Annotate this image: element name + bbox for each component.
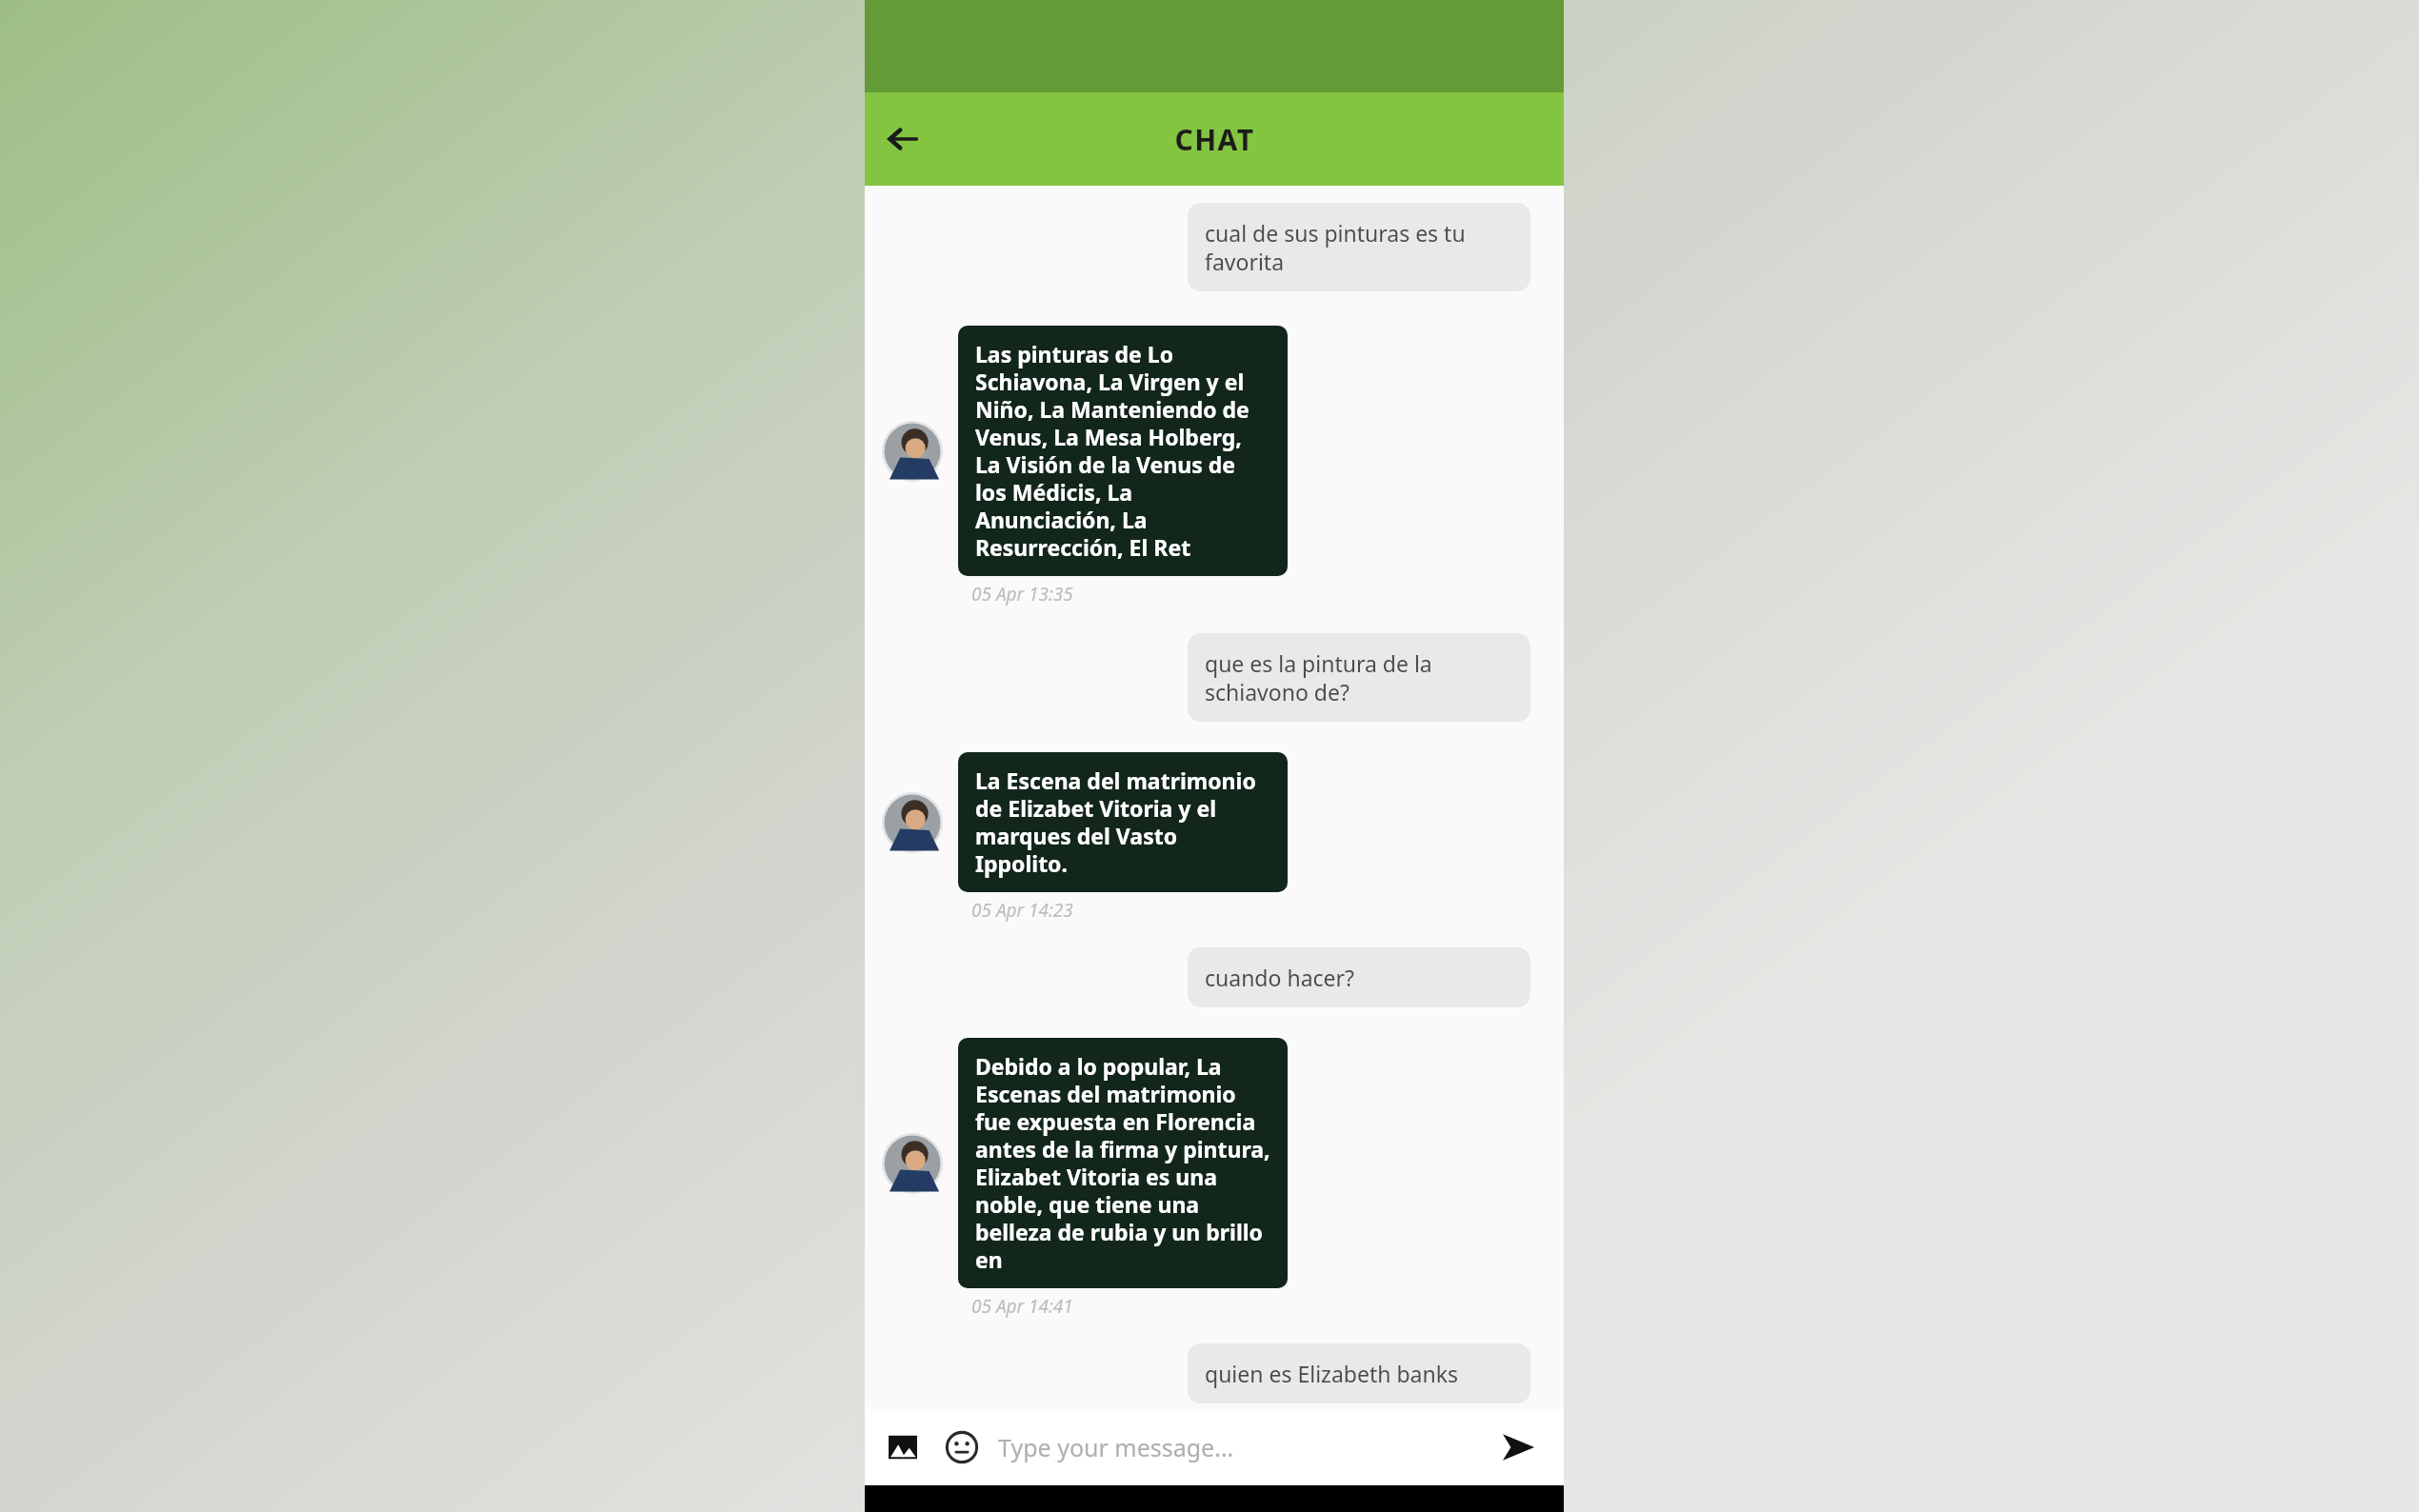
button[interactable]: Attach image (880, 1424, 926, 1470)
button[interactable]: Debido a lo popular, La Escenas del matr… (958, 1038, 1288, 1288)
staticText: cuando hacer? (1205, 963, 1355, 992)
button[interactable]: Emoji (939, 1424, 985, 1470)
button[interactable]: Las pinturas de Lo Schiavona, La Virgen … (958, 326, 1288, 576)
button[interactable]: Type your message... (998, 1409, 1489, 1485)
staticText: Debido a lo popular, La Escenas del matr… (975, 1051, 1270, 1275)
staticText: 05 Apr 13:35 (971, 582, 1073, 607)
staticText: Type your message... (998, 1431, 1234, 1463)
button[interactable]: cuando hacer? (1188, 947, 1530, 1007)
staticText: 05 Apr 14:23 (971, 898, 1073, 923)
staticText: que es la pintura de la schiavono de? (1205, 648, 1513, 706)
staticText: cual de sus pinturas es tu favorita (1205, 218, 1513, 276)
button[interactable]: La Escena del matrimonio de Elizabet Vit… (958, 752, 1288, 892)
button[interactable]: Back (876, 112, 930, 166)
staticText: Las pinturas de Lo Schiavona, La Virgen … (975, 339, 1270, 563)
staticText: La Escena del matrimonio de Elizabet Vit… (975, 766, 1270, 879)
button[interactable]: que es la pintura de la schiavono de? (1188, 633, 1530, 722)
button[interactable]: quien es Elizabeth banks (1188, 1343, 1530, 1403)
staticText: quien es Elizabeth banks (1205, 1359, 1458, 1388)
staticText: CHAT (1174, 120, 1255, 159)
button[interactable]: Send (1489, 1419, 1547, 1476)
staticText: 05 Apr 14:41 (971, 1294, 1073, 1319)
button[interactable]: cual de sus pinturas es tu favorita (1188, 203, 1530, 291)
